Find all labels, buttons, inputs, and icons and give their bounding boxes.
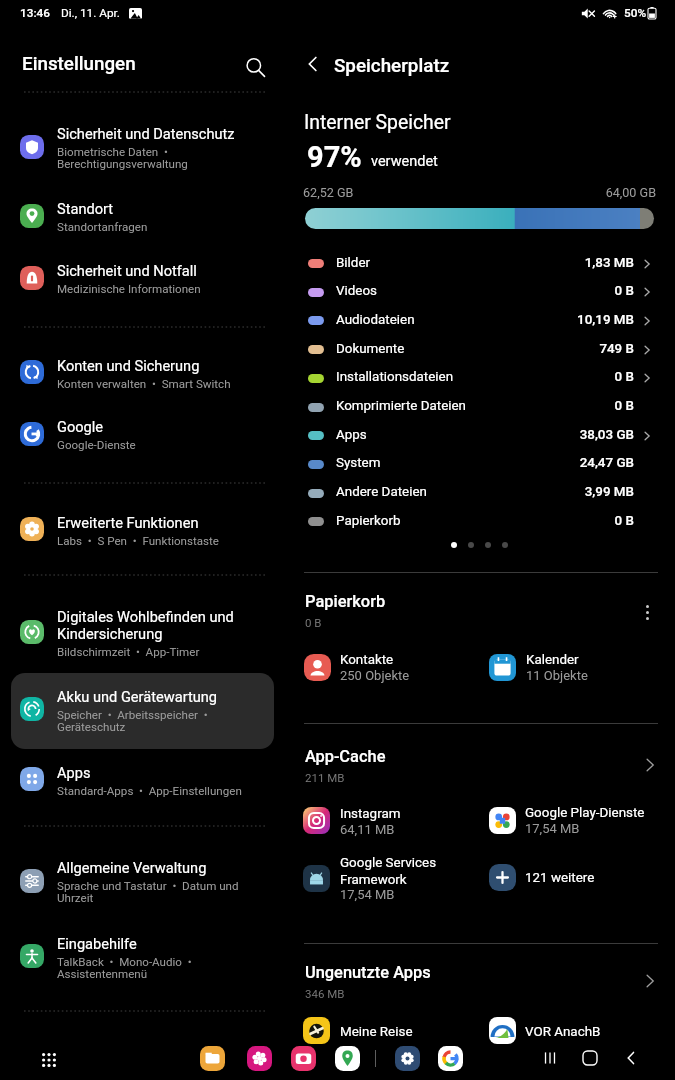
staticText: Standortanfragen <box>57 220 148 234</box>
button[interactable] <box>300 336 658 364</box>
button[interactable]: Zurück <box>298 49 328 79</box>
button[interactable] <box>300 860 482 898</box>
button[interactable]: Alle Apps <box>35 1046 62 1073</box>
button[interactable] <box>486 801 668 839</box>
button[interactable] <box>10 848 273 914</box>
button[interactable]: Zurück <box>618 1045 644 1071</box>
button[interactable]: Einstellungen <box>394 1045 421 1072</box>
staticText: 0 B <box>510 369 634 385</box>
staticText: 38,03 GB <box>510 427 634 443</box>
button[interactable] <box>300 250 658 278</box>
button[interactable] <box>486 649 668 687</box>
staticText: Speicher • Arbeitsspeicher • Geräteschut… <box>57 708 208 734</box>
button[interactable] <box>10 114 273 180</box>
staticText: Sicherheit und Notfall <box>57 262 197 279</box>
staticText: Apps <box>336 427 367 443</box>
button[interactable]: Mehr Optionen <box>634 599 660 625</box>
staticText: 0 B <box>510 283 634 299</box>
staticText: System <box>336 455 381 471</box>
staticText: 749 B <box>510 341 634 357</box>
staticText: App-Cache <box>305 747 386 766</box>
staticText: Audiodateien <box>336 312 415 328</box>
button[interactable] <box>486 858 668 896</box>
staticText: Di., 11. Apr. <box>61 6 120 20</box>
staticText: Allgemeine Verwaltung <box>57 859 207 876</box>
button[interactable] <box>300 802 482 840</box>
button[interactable] <box>300 508 658 536</box>
button[interactable]: Maps <box>334 1045 361 1072</box>
button[interactable] <box>300 479 658 507</box>
button[interactable] <box>300 422 658 450</box>
staticText: Kontakte <box>340 652 394 668</box>
staticText: 64,11 MB <box>340 822 395 837</box>
staticText: Google <box>57 418 104 435</box>
staticText: Standort <box>57 200 114 217</box>
button[interactable] <box>10 340 273 406</box>
staticText: 17,54 MB <box>525 821 580 836</box>
staticText: 97% <box>307 140 362 174</box>
staticText: Installationsdateien <box>336 369 454 385</box>
button[interactable] <box>300 393 658 421</box>
button[interactable] <box>301 649 483 687</box>
button[interactable] <box>10 401 273 467</box>
button[interactable]: Suchen <box>239 51 272 84</box>
button[interactable] <box>10 747 273 813</box>
staticText: 250 Objekte <box>340 668 410 683</box>
staticText: Instagram <box>340 806 401 822</box>
button[interactable]: Kamera <box>290 1045 317 1072</box>
staticText: Konten und Sicherung <box>57 357 200 374</box>
button[interactable] <box>300 586 658 634</box>
staticText: Google Services Framework <box>340 855 437 887</box>
staticText: Google Play-Dienste <box>525 805 645 821</box>
button[interactable] <box>486 1012 668 1050</box>
button[interactable] <box>10 496 273 562</box>
staticText: Komprimierte Dateien <box>336 398 466 414</box>
staticText: Bildschirmzeit • App-Timer <box>57 645 200 659</box>
staticText: Speicherplatz <box>334 55 450 77</box>
staticText: Sprache und Tastatur • Datum und Uhrzeit <box>57 879 239 905</box>
button[interactable] <box>10 677 273 743</box>
staticText: Google-Dienste <box>57 438 136 452</box>
button[interactable]: Letzte Apps <box>537 1045 563 1071</box>
staticText: Interner Speicher <box>304 111 451 134</box>
staticText: Standard-Apps • App-Einstellungen <box>57 784 242 798</box>
staticText: Erweiterte Funktionen <box>57 514 199 531</box>
staticText: Videos <box>336 283 377 299</box>
staticText: Ungenutzte Apps <box>305 963 431 982</box>
staticText: Meine Reise <box>340 1024 413 1040</box>
button[interactable] <box>300 1012 482 1050</box>
button[interactable] <box>10 245 273 311</box>
button[interactable]: Galerie <box>246 1045 273 1072</box>
staticText: 13:46 <box>20 6 50 20</box>
staticText: 0 B <box>305 616 322 629</box>
staticText: Digitales Wohlbefinden und Kindersicheru… <box>57 608 234 642</box>
staticText: 10,19 MB <box>510 312 634 328</box>
staticText: 1,83 MB <box>510 255 634 271</box>
button[interactable] <box>300 364 658 392</box>
staticText: verwendet <box>371 153 438 170</box>
staticText: 64,00 GB <box>570 185 656 200</box>
button[interactable]: Google <box>437 1045 464 1072</box>
button[interactable] <box>10 599 273 665</box>
staticText: 346 MB <box>305 987 345 1000</box>
button[interactable] <box>300 278 658 306</box>
staticText: Biometrische Daten • Berechtigungsverwal… <box>57 145 188 171</box>
staticText: Konten verwalten • Smart Switch <box>57 377 231 391</box>
staticText: Sicherheit und Datenschutz <box>57 125 235 142</box>
button[interactable] <box>300 957 658 1005</box>
staticText: Eingabehilfe <box>57 935 137 952</box>
button[interactable] <box>10 183 273 249</box>
button[interactable] <box>300 741 658 789</box>
staticText: 17,54 MB <box>340 887 395 902</box>
staticText: 24,47 GB <box>510 455 634 471</box>
button[interactable]: Startseite <box>577 1045 603 1071</box>
staticText: Bilder <box>336 255 371 271</box>
button[interactable]: Eigene Dateien <box>199 1045 226 1072</box>
staticText: Papierkorb <box>336 513 401 529</box>
button[interactable] <box>300 307 658 335</box>
staticText: Dokumente <box>336 341 405 357</box>
staticText: TalkBack • Mono-Audio • Assistentenmenü <box>57 955 192 981</box>
button[interactable] <box>10 924 273 990</box>
button[interactable] <box>300 450 658 478</box>
staticText: VOR AnachB <box>525 1024 601 1040</box>
